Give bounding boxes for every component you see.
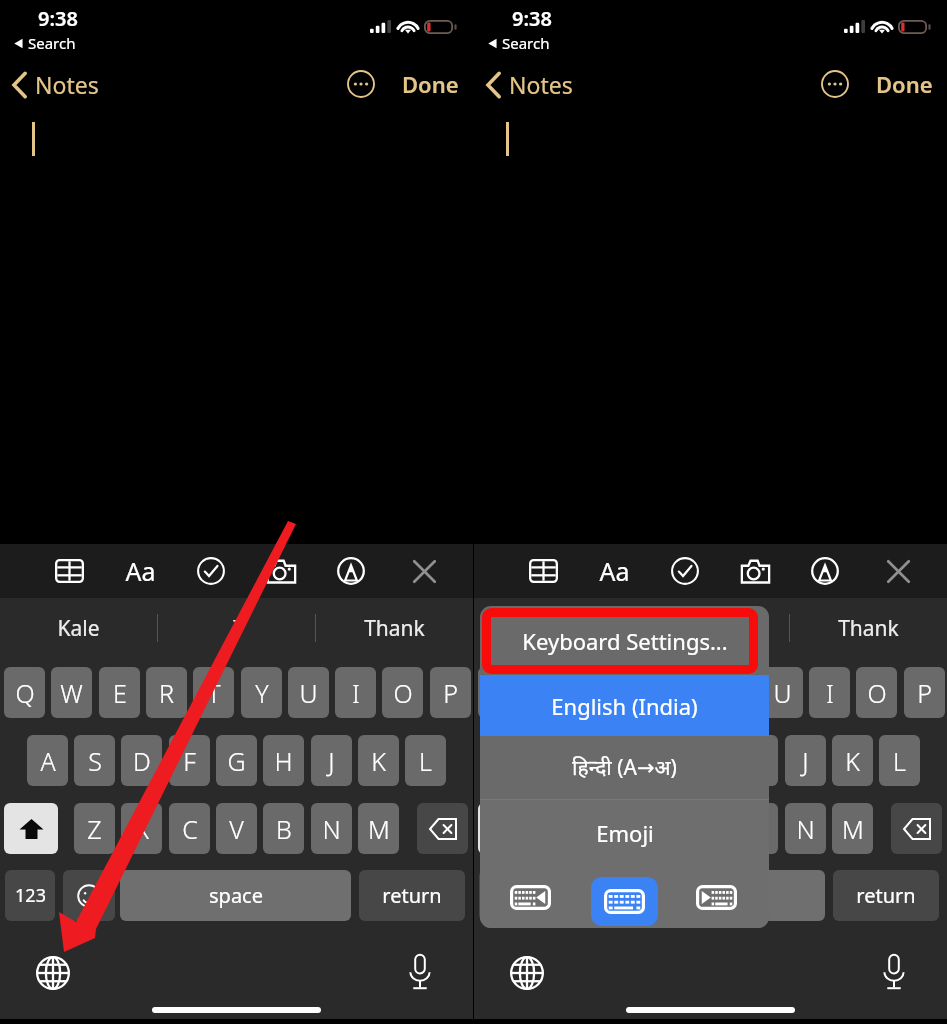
button[interactable]: V (216, 803, 257, 854)
button[interactable]: Notes (482, 65, 577, 104)
staticText: Kale (531, 614, 574, 643)
button[interactable]: Markup (802, 548, 848, 594)
button[interactable]: Thank (790, 598, 946, 658)
button[interactable]: Thank (316, 598, 472, 658)
button[interactable]: O (382, 667, 423, 718)
button[interactable]: X (121, 803, 162, 854)
button[interactable]: Kale (0, 598, 156, 658)
button[interactable]: Done (398, 65, 463, 103)
button[interactable]: Table (520, 548, 566, 594)
button[interactable]: Checklist (662, 548, 708, 594)
button[interactable]: B (263, 803, 304, 854)
button[interactable]: Emoji (63, 870, 115, 921)
button[interactable]: W (51, 667, 92, 718)
button[interactable]: space (120, 870, 351, 921)
button[interactable]: Format text (117, 548, 163, 594)
button[interactable]: 123 (5, 870, 55, 921)
button[interactable]: return (359, 870, 465, 921)
button[interactable]: D (121, 735, 162, 786)
button[interactable]: Done (872, 65, 937, 103)
button[interactable]: M (832, 803, 873, 854)
button[interactable]: M (358, 803, 399, 854)
button[interactable]: Dictation (876, 952, 912, 992)
button[interactable]: D (595, 735, 636, 786)
button[interactable]: Keyboard (591, 877, 658, 926)
button[interactable]: L (879, 735, 920, 786)
button[interactable]: G (216, 735, 257, 786)
button[interactable]: C (169, 803, 210, 854)
button[interactable]: Kale (474, 598, 630, 658)
button[interactable]: Change keyboard (507, 953, 547, 993)
button[interactable]: T (667, 667, 708, 718)
button[interactable]: F (643, 735, 684, 786)
button[interactable]: P (430, 667, 471, 718)
button[interactable]: I (632, 598, 788, 658)
button[interactable]: J (785, 735, 826, 786)
button[interactable]: Previous keyboard (504, 879, 557, 916)
button[interactable]: W (525, 667, 566, 718)
button[interactable]: Notes (8, 65, 103, 104)
button[interactable]: Close (875, 548, 921, 594)
button[interactable]: Q (478, 667, 519, 718)
button[interactable]: Y (241, 667, 282, 718)
button[interactable]: L (405, 735, 446, 786)
button[interactable]: E (99, 667, 140, 718)
button[interactable]: Emoji (537, 870, 589, 921)
button[interactable]: I (335, 667, 376, 718)
button[interactable]: J (311, 735, 352, 786)
button[interactable]: F (169, 735, 210, 786)
button[interactable]: Change keyboard (33, 953, 73, 993)
button[interactable]: B (737, 803, 778, 854)
button[interactable]: N (785, 803, 826, 854)
button[interactable]: I (809, 667, 850, 718)
button[interactable]: U (288, 667, 329, 718)
button[interactable]: G (690, 735, 731, 786)
button[interactable]: S (548, 735, 589, 786)
button[interactable]: H (263, 735, 304, 786)
button[interactable]: Close (401, 548, 447, 594)
button[interactable]: Table (46, 548, 92, 594)
button[interactable]: R (620, 667, 661, 718)
button[interactable]: Q (4, 667, 45, 718)
button[interactable]: Format text (591, 548, 637, 594)
button[interactable]: 123 (479, 870, 529, 921)
button[interactable]: S (74, 735, 115, 786)
button[interactable]: I (158, 598, 314, 658)
button[interactable]: Camera (258, 548, 304, 594)
button[interactable]: A (27, 735, 68, 786)
button[interactable]: Checklist (188, 548, 234, 594)
button[interactable]: T (193, 667, 234, 718)
button[interactable]: Next keyboard (690, 879, 743, 916)
button[interactable]: Shift (4, 803, 58, 854)
button[interactable]: K (832, 735, 873, 786)
button[interactable]: Backspace (417, 803, 468, 854)
button[interactable]: space (594, 870, 825, 921)
button[interactable]: K (358, 735, 399, 786)
button[interactable]: A (501, 735, 542, 786)
button[interactable]: Camera (732, 548, 778, 594)
button[interactable]: Backspace (891, 803, 942, 854)
button[interactable]: हिन्दी (A→अ) (480, 736, 769, 799)
button[interactable]: Shift (478, 803, 532, 854)
button[interactable]: Emoji (480, 800, 769, 866)
button[interactable]: R (146, 667, 187, 718)
button[interactable]: Dictation (402, 952, 438, 992)
button[interactable]: O (856, 667, 897, 718)
button[interactable]: E (573, 667, 614, 718)
button[interactable]: Z (74, 803, 115, 854)
button[interactable]: Y (715, 667, 756, 718)
button[interactable]: return (833, 870, 939, 921)
button[interactable]: N (311, 803, 352, 854)
button[interactable]: U (762, 667, 803, 718)
button[interactable]: More options (347, 70, 375, 98)
button[interactable]: H (737, 735, 778, 786)
button[interactable]: X (595, 803, 636, 854)
button[interactable]: English (India) (480, 675, 769, 736)
button[interactable]: Markup (328, 548, 374, 594)
button[interactable]: Keyboard Settings... (480, 606, 769, 675)
button[interactable]: More options (821, 70, 849, 98)
button[interactable]: P (904, 667, 945, 718)
button[interactable]: C (643, 803, 684, 854)
